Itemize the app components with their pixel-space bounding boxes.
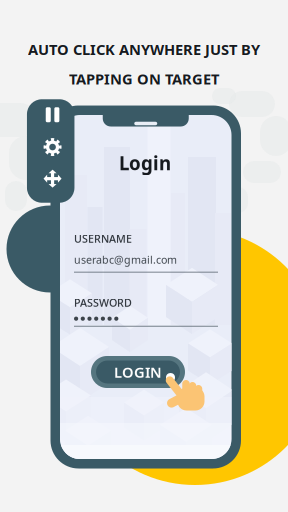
staticText: userabc@gmail.com bbox=[74, 253, 177, 267]
button[interactable]: Settings bbox=[39, 133, 67, 161]
staticText: TAPPING ON TARGET bbox=[69, 69, 219, 88]
staticText: Login bbox=[119, 151, 171, 175]
button[interactable]: LOGIN bbox=[91, 356, 185, 388]
staticText: AUTO CLICK ANYWHERE JUST BY bbox=[28, 39, 260, 59]
button[interactable]: Move bbox=[39, 165, 67, 193]
button[interactable]: Pause bbox=[39, 100, 67, 129]
staticText: PASSWORD bbox=[74, 295, 132, 310]
staticText: LOGIN bbox=[114, 362, 162, 382]
staticText: USERNAME bbox=[74, 231, 132, 246]
